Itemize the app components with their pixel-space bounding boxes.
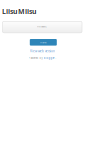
button[interactable]: Home (30, 39, 57, 46)
staticText: LiisuMiisu (2, 6, 37, 16)
staticText: Blogger (43, 56, 54, 60)
button[interactable]: Blogger (43, 56, 54, 60)
staticText: No posts. (37, 25, 47, 28)
button[interactable]: View web version (0, 49, 85, 53)
staticText: Home (40, 41, 46, 44)
staticText: Powered by (28, 56, 42, 60)
staticText: View web version (30, 49, 55, 53)
